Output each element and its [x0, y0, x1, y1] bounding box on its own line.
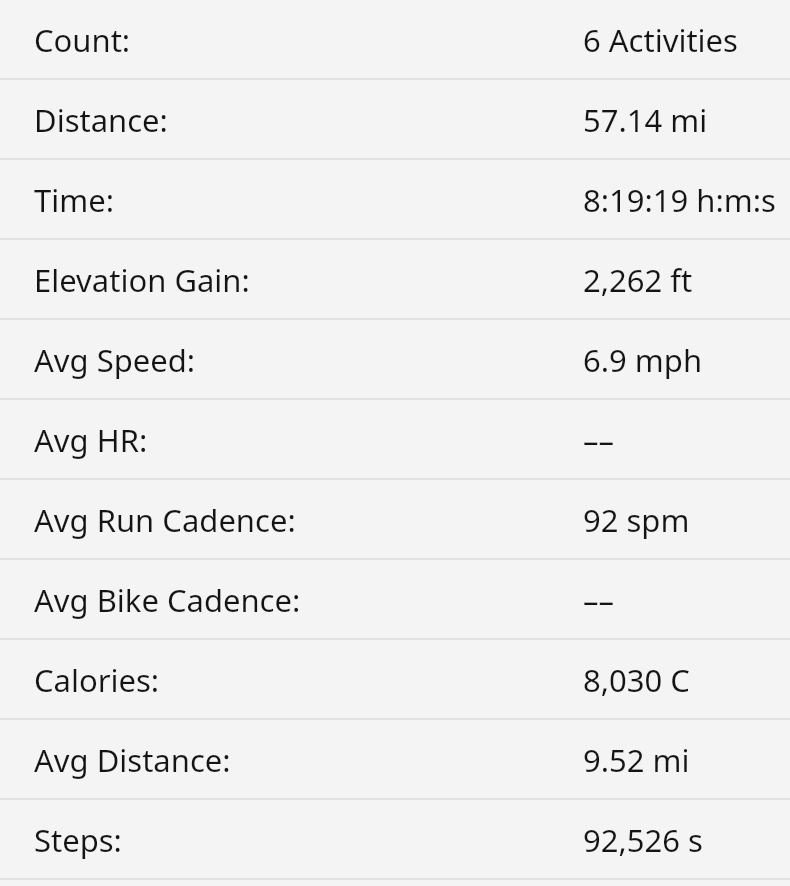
staticText: Avg Bike Cadence:: [34, 579, 301, 621]
staticText: ––: [583, 419, 614, 461]
staticText: 6.9 mph: [583, 339, 703, 381]
staticText: ––: [583, 579, 614, 621]
staticText: 8,030 C: [583, 659, 690, 701]
staticText: 8:19:19 h:m:s: [583, 179, 776, 221]
button[interactable]: Count:: [0, 0, 790, 80]
staticText: 9.52 mi: [583, 739, 690, 781]
button[interactable]: Avg HR:: [0, 400, 790, 480]
button[interactable]: Steps:: [0, 800, 790, 880]
staticText: Calories:: [34, 659, 160, 701]
staticText: Distance:: [34, 99, 168, 141]
staticText: 92 spm: [583, 499, 690, 541]
button[interactable]: Time:: [0, 160, 790, 240]
button[interactable]: Distance:: [0, 80, 790, 160]
staticText: 92,526 s: [583, 819, 703, 861]
button[interactable]: Avg Bike Cadence:: [0, 560, 790, 640]
staticText: 6 Activities: [583, 19, 738, 61]
staticText: 57.14 mi: [583, 99, 708, 141]
staticText: Avg HR:: [34, 419, 148, 461]
staticText: 2,262 ft: [583, 259, 693, 301]
staticText: Avg Speed:: [34, 339, 196, 381]
staticText: Avg Distance:: [34, 739, 231, 781]
staticText: Avg Run Cadence:: [34, 499, 296, 541]
button[interactable]: Avg Run Cadence:: [0, 480, 790, 560]
button[interactable]: Avg Speed:: [0, 320, 790, 400]
staticText: Time:: [34, 179, 115, 221]
staticText: Steps:: [34, 819, 122, 861]
staticText: Count:: [34, 19, 131, 61]
button[interactable]: Elevation Gain:: [0, 240, 790, 320]
button[interactable]: Avg Distance:: [0, 720, 790, 800]
button[interactable]: Calories:: [0, 640, 790, 720]
staticText: Elevation Gain:: [34, 259, 250, 301]
